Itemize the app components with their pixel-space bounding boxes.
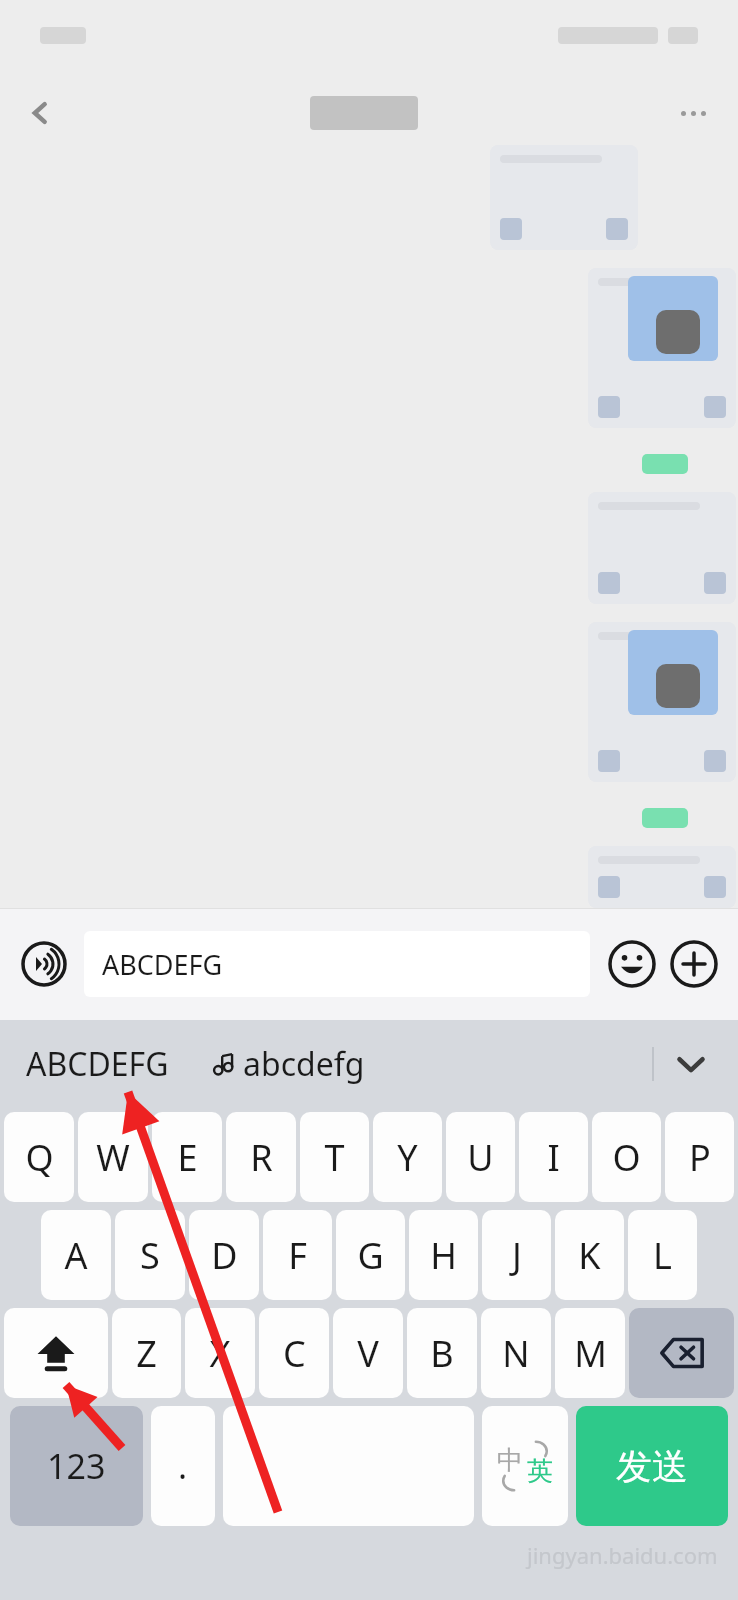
button[interactable]: E bbox=[152, 1112, 222, 1202]
button[interactable]: F bbox=[263, 1210, 332, 1300]
staticText: . bbox=[178, 1443, 188, 1489]
button[interactable]: O bbox=[592, 1112, 661, 1202]
button[interactable]: 123 bbox=[10, 1406, 143, 1526]
button[interactable]: J bbox=[482, 1210, 551, 1300]
staticText: F bbox=[288, 1231, 307, 1280]
staticText: V bbox=[357, 1329, 379, 1378]
staticText: U bbox=[467, 1133, 494, 1182]
button[interactable]: Space bbox=[223, 1406, 474, 1526]
button[interactable]: P bbox=[665, 1112, 734, 1202]
button[interactable] bbox=[588, 268, 736, 428]
staticText: abcdefg bbox=[243, 1042, 365, 1086]
button[interactable]: D bbox=[189, 1210, 259, 1300]
button[interactable]: R bbox=[226, 1112, 296, 1202]
button[interactable]: Q bbox=[4, 1112, 74, 1202]
staticText: B bbox=[430, 1329, 454, 1378]
button[interactable]: . bbox=[151, 1406, 215, 1526]
staticText: ABCDEFG bbox=[102, 946, 223, 983]
button[interactable] bbox=[490, 145, 638, 250]
staticText: Q bbox=[25, 1133, 54, 1182]
staticText: jingyan.baidu.com bbox=[527, 1540, 718, 1570]
button[interactable]: V bbox=[333, 1308, 403, 1398]
staticText: G bbox=[357, 1231, 384, 1280]
button[interactable]: H bbox=[409, 1210, 478, 1300]
button[interactable]: Z bbox=[112, 1308, 181, 1398]
button[interactable]: Y bbox=[373, 1112, 442, 1202]
button[interactable]: A bbox=[41, 1210, 111, 1300]
staticText: W bbox=[96, 1133, 130, 1182]
staticText: N bbox=[502, 1329, 530, 1378]
staticText: S bbox=[140, 1231, 160, 1280]
button[interactable]: Emoji bbox=[604, 936, 660, 992]
staticText: Z bbox=[136, 1329, 157, 1378]
button[interactable]: ABCDEFG bbox=[84, 931, 590, 997]
button[interactable]: Shift bbox=[4, 1308, 108, 1398]
button[interactable]: More bbox=[666, 936, 722, 992]
staticText: J bbox=[512, 1231, 522, 1280]
button[interactable] bbox=[588, 846, 736, 908]
staticText: C bbox=[283, 1329, 306, 1378]
staticText: L bbox=[653, 1231, 672, 1280]
staticText: 123 bbox=[47, 1443, 106, 1489]
button[interactable]: W bbox=[78, 1112, 148, 1202]
button[interactable]: M bbox=[555, 1308, 625, 1398]
button[interactable]: N bbox=[481, 1308, 551, 1398]
button[interactable]: U bbox=[446, 1112, 515, 1202]
staticText: I bbox=[547, 1133, 560, 1182]
staticText: M bbox=[574, 1329, 607, 1378]
button[interactable]: abcdefg bbox=[207, 1034, 369, 1094]
staticText: P bbox=[689, 1133, 711, 1182]
staticText: H bbox=[430, 1231, 457, 1280]
staticText: ABCDEFG bbox=[26, 1042, 169, 1086]
staticText: D bbox=[211, 1231, 238, 1280]
button[interactable] bbox=[588, 492, 736, 604]
staticText: E bbox=[177, 1133, 198, 1182]
staticText: T bbox=[324, 1133, 345, 1182]
button[interactable]: L bbox=[628, 1210, 697, 1300]
button[interactable]: ABCDEFG bbox=[22, 1034, 173, 1094]
button[interactable] bbox=[588, 622, 736, 782]
button[interactable]: B bbox=[407, 1308, 477, 1398]
button[interactable]: G bbox=[336, 1210, 405, 1300]
button[interactable]: C bbox=[259, 1308, 329, 1398]
button[interactable]: T bbox=[300, 1112, 369, 1202]
staticText: Y bbox=[397, 1133, 418, 1182]
button[interactable]: Voice input bbox=[16, 936, 72, 992]
button[interactable]: X bbox=[185, 1308, 255, 1398]
staticText: K bbox=[578, 1231, 601, 1280]
staticText: 发送 bbox=[616, 1444, 688, 1489]
staticText: R bbox=[250, 1133, 273, 1182]
button[interactable]: 发送 bbox=[576, 1406, 728, 1526]
button[interactable]: Hide keyboard bbox=[654, 1020, 728, 1108]
staticText: 英 bbox=[527, 1455, 553, 1488]
button[interactable]: Back bbox=[0, 58, 80, 168]
staticText: X bbox=[209, 1329, 231, 1378]
button[interactable]: Switch Chinese English bbox=[482, 1406, 568, 1526]
button[interactable]: K bbox=[555, 1210, 624, 1300]
button[interactable]: I bbox=[519, 1112, 588, 1202]
staticText: 中 bbox=[497, 1444, 523, 1477]
button[interactable]: Backspace bbox=[629, 1308, 734, 1398]
staticText: A bbox=[64, 1231, 88, 1280]
button[interactable]: S bbox=[115, 1210, 185, 1300]
button[interactable]: More options bbox=[648, 58, 738, 168]
staticText: O bbox=[612, 1133, 641, 1182]
